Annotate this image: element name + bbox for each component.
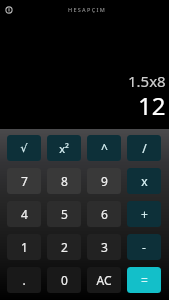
button[interactable]: + [127,201,161,227]
button[interactable]: - [127,234,161,260]
button[interactable]: 6 [87,201,121,227]
staticText: 0 [61,272,68,288]
staticText: - [142,239,146,255]
staticText: 12 [138,89,166,122]
button[interactable]: 8 [47,168,81,194]
button[interactable]: . [7,267,41,293]
button[interactable]: ^ [87,135,121,161]
staticText: = [141,272,148,288]
staticText: √ [20,142,28,155]
button[interactable]: 2 [47,234,81,260]
button[interactable]: √ [7,135,41,161]
button[interactable]: 0 [47,267,81,293]
staticText: 5 [61,206,68,222]
button[interactable]: History [1,2,16,17]
staticText: 8 [61,173,68,189]
button[interactable]: / [127,135,161,161]
staticText: 4 [21,206,28,222]
staticText: 1 [21,239,28,255]
staticText: 9 [101,173,108,189]
staticText: / [142,140,147,156]
staticText: . [22,272,26,288]
staticText: 3 [101,239,108,255]
button[interactable]: x² [47,135,81,161]
staticText: 2 [61,239,68,255]
button[interactable]: 9 [87,168,121,194]
staticText: AC [96,272,112,288]
staticText: x [141,173,148,189]
button[interactable]: 7 [7,168,41,194]
button[interactable]: 5 [47,201,81,227]
staticText: 1.5x8 [128,71,166,91]
button[interactable]: 1 [7,234,41,260]
staticText: 7 [21,173,28,189]
staticText: + [141,206,148,222]
button[interactable]: AC [87,267,121,293]
staticText: ^ [101,140,108,156]
staticText: 6 [101,206,108,222]
button[interactable]: 4 [7,201,41,227]
button[interactable]: 3 [87,234,121,260]
staticText: HESAPÇIM [68,6,107,13]
button[interactable]: = [127,267,161,293]
staticText: x² [59,141,69,156]
button[interactable]: x [127,168,161,194]
